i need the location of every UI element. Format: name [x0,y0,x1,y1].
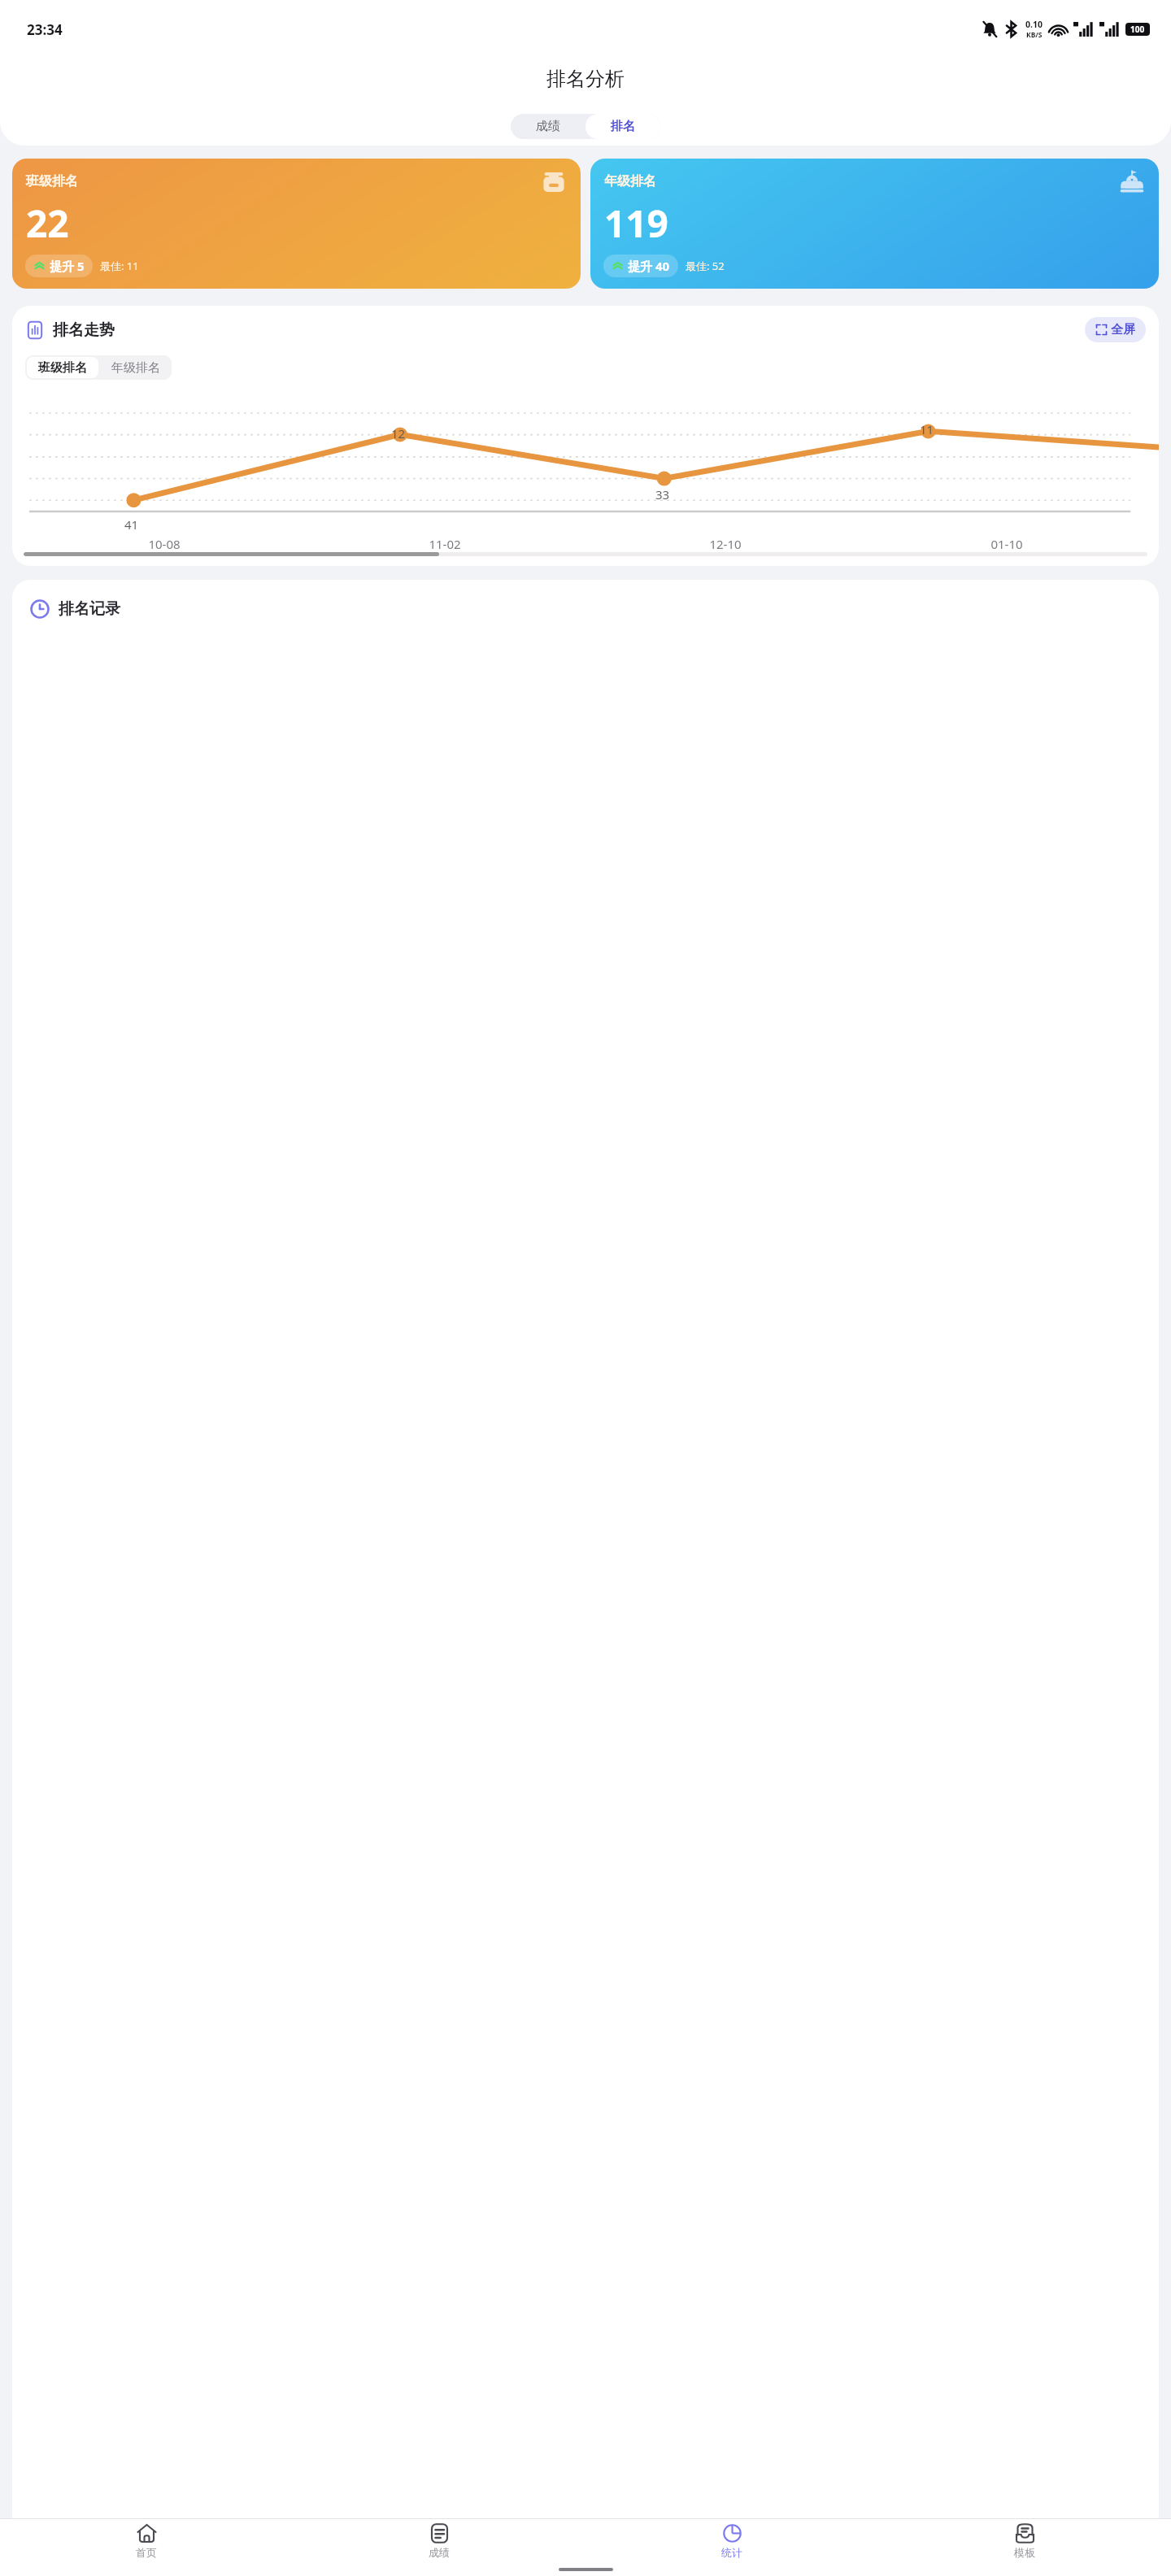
staticText: 11 [920,421,934,437]
staticText: 12 [391,425,406,442]
button[interactable]: 班级排名 [27,357,98,378]
staticText: 提升 40 [628,258,670,274]
staticText: 成绩 [429,2546,450,2559]
button[interactable]: 统计 [585,2519,878,2562]
staticText: 12-10 [709,536,742,552]
staticText: 100 [1130,24,1145,35]
staticText: 最佳: 52 [686,259,725,273]
staticText: 首页 [136,2546,157,2559]
button[interactable]: 成绩 [511,114,585,139]
staticText: 10-08 [148,536,181,552]
staticText: 排名 [611,119,635,134]
staticText: 01-10 [990,536,1023,552]
staticText: 年级排名 [604,173,656,189]
staticText: 41 [124,516,139,533]
staticText: 班级排名 [38,360,87,376]
staticText: KB/S [1026,30,1043,40]
staticText: 33 [655,486,670,503]
staticText: 全屏 [1111,322,1135,337]
staticText: 排名走势 [53,320,115,340]
staticText: 最佳: 11 [100,259,139,273]
staticText: 22 [26,198,69,249]
button[interactable]: 成绩 [293,2519,585,2562]
staticText: 23:34 [27,20,63,39]
button[interactable]: 年级排名 [100,355,172,380]
staticText: 119 [604,198,668,249]
button[interactable]: 首页 [0,2519,293,2562]
staticText: 排名分析 [546,67,625,91]
staticText: 模板 [1014,2546,1035,2559]
button[interactable]: 排名 [585,114,660,139]
button[interactable]: 年级排名 [590,159,1159,289]
staticText: 11-02 [429,536,461,552]
staticText: 成绩 [536,119,560,134]
staticText: 班级排名 [26,173,78,189]
staticText: 排名记录 [59,599,120,619]
staticText: 年级排名 [111,360,160,376]
button[interactable]: 全屏 [1085,317,1146,342]
staticText: 统计 [721,2546,742,2559]
button[interactable]: 模板 [878,2519,1171,2562]
button[interactable]: 班级排名 [12,159,581,289]
staticText: 0.10 [1025,19,1043,30]
staticText: 提升 5 [50,258,85,274]
